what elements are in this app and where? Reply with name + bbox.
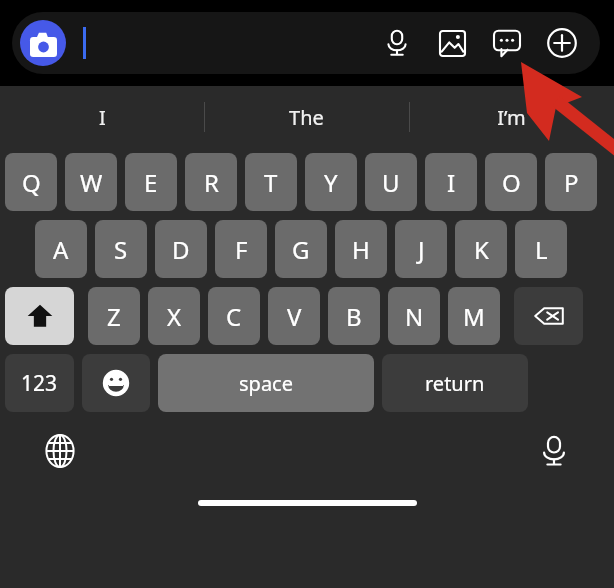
button[interactable]: K <box>455 220 507 278</box>
button[interactable]: J <box>395 220 447 278</box>
staticText: O <box>502 166 521 199</box>
staticText: V <box>287 300 302 333</box>
button[interactable]: Emoji <box>82 354 150 412</box>
button[interactable]: D <box>155 220 207 278</box>
button[interactable]: C <box>208 287 260 345</box>
staticText: B <box>346 300 362 333</box>
staticText: L <box>535 233 548 266</box>
staticText: D <box>172 233 190 266</box>
staticText: Q <box>22 166 41 199</box>
button[interactable]: X <box>148 287 200 345</box>
button[interactable]: Dictation <box>530 427 578 475</box>
staticText: S <box>114 233 128 266</box>
staticText: A <box>53 233 69 266</box>
button[interactable]: 123 <box>5 354 74 412</box>
staticText: U <box>382 166 400 199</box>
button[interactable]: B <box>328 287 380 345</box>
button[interactable]: W <box>65 153 117 211</box>
button[interactable]: Photos <box>430 21 474 65</box>
button[interactable]: F <box>215 220 267 278</box>
staticText: F <box>235 233 248 266</box>
button[interactable]: Y <box>305 153 357 211</box>
staticText: C <box>226 300 242 333</box>
button[interactable]: L <box>515 220 567 278</box>
staticText: I <box>447 166 456 199</box>
button[interactable]: A <box>35 220 87 278</box>
staticText: Y <box>324 166 338 199</box>
button[interactable]: I <box>0 86 204 148</box>
button[interactable]: O <box>485 153 537 211</box>
button[interactable]: Change keyboard language <box>36 427 84 475</box>
button[interactable]: U <box>365 153 417 211</box>
staticText: N <box>405 300 424 333</box>
staticText: 123 <box>21 369 58 398</box>
button[interactable]: return <box>382 354 528 412</box>
button[interactable]: R <box>185 153 237 211</box>
button[interactable]: I’m <box>409 86 614 148</box>
staticText: G <box>292 233 310 266</box>
button[interactable]: G <box>275 220 327 278</box>
button[interactable]: E <box>125 153 177 211</box>
button[interactable]: P <box>545 153 597 211</box>
button[interactable]: Stickers <box>485 21 529 65</box>
button[interactable]: Voice input <box>375 21 419 65</box>
staticText: I <box>99 104 106 131</box>
button[interactable]: Z <box>88 287 140 345</box>
button[interactable]: Shift, caps lock on <box>5 287 74 345</box>
button[interactable]: S <box>95 220 147 278</box>
button[interactable]: I <box>425 153 477 211</box>
staticText: space <box>239 370 293 397</box>
button[interactable]: Camera <box>20 20 66 66</box>
staticText: return <box>425 370 485 397</box>
button[interactable]: H <box>335 220 387 278</box>
staticText: P <box>564 166 579 199</box>
button[interactable]: V <box>268 287 320 345</box>
staticText: M <box>463 300 485 333</box>
button[interactable]: space <box>158 354 374 412</box>
staticText: E <box>144 166 158 199</box>
staticText: The <box>289 104 324 131</box>
staticText: T <box>264 166 278 199</box>
staticText: R <box>204 166 219 199</box>
button[interactable]: N <box>388 287 440 345</box>
button[interactable]: Q <box>5 153 57 211</box>
staticText: K <box>474 233 489 266</box>
button[interactable]: T <box>245 153 297 211</box>
button[interactable]: The <box>204 86 409 148</box>
staticText: W <box>80 166 103 199</box>
staticText: I’m <box>497 104 526 131</box>
button[interactable]: Backspace <box>514 287 583 345</box>
staticText: H <box>352 233 370 266</box>
button[interactable]: More apps <box>540 21 584 65</box>
staticText: Z <box>107 300 121 333</box>
button[interactable]: M <box>448 287 500 345</box>
staticText: J <box>418 233 425 266</box>
staticText: X <box>167 300 182 333</box>
